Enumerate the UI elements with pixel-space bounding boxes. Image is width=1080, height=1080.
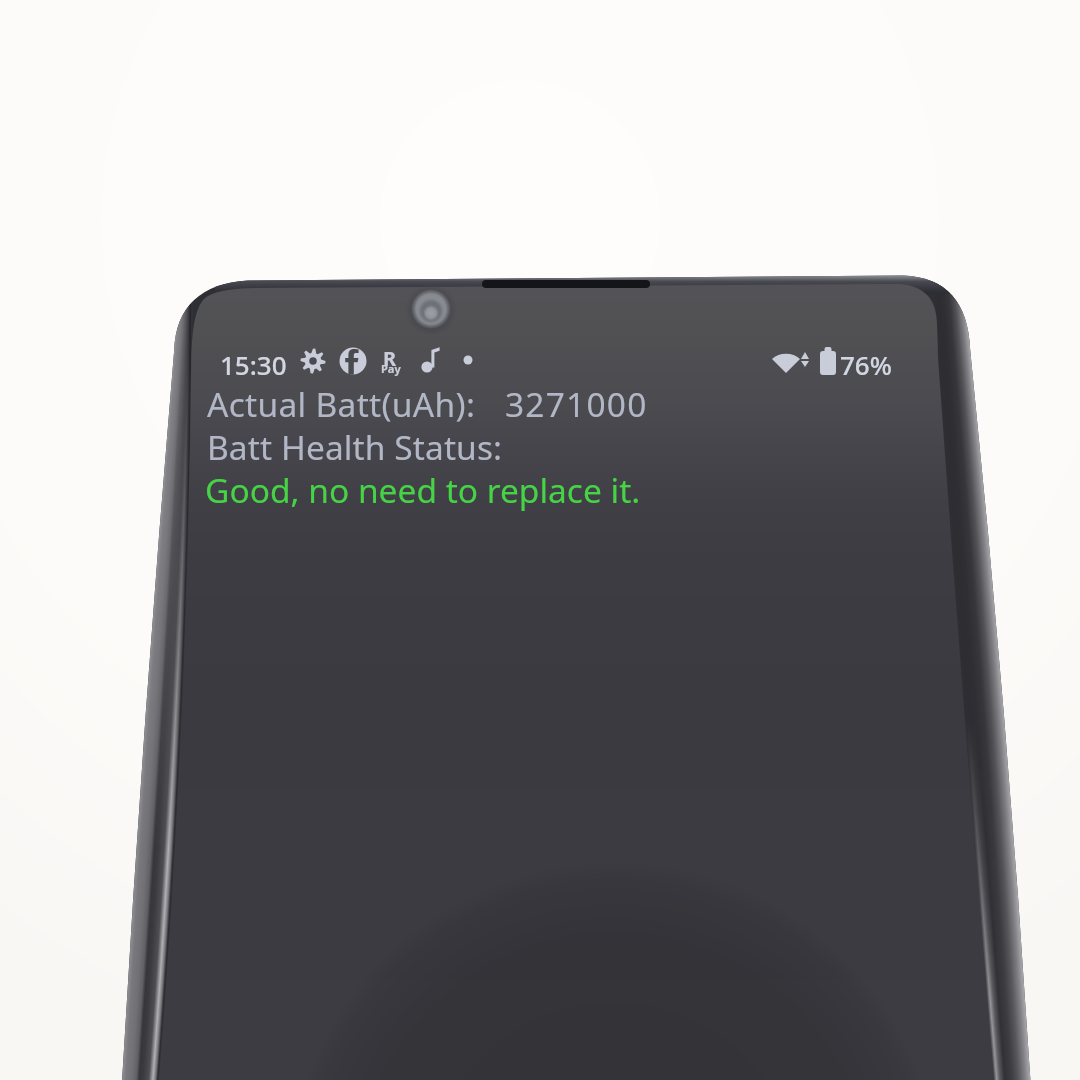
button[interactable]: Battery health status — [207, 424, 647, 466]
button[interactable]: R Pay — [375, 345, 407, 377]
button[interactable]: Good, no need to replace it. — [205, 467, 645, 511]
button[interactable]: Actual battery capacity 3271000 uAh — [207, 381, 647, 423]
button[interactable]: Clock 15:30 — [213, 346, 289, 378]
button[interactable]: Music — [415, 345, 447, 377]
button[interactable]: Settings — [299, 345, 329, 377]
button[interactable]: Battery 76 percent — [816, 345, 896, 381]
button[interactable]: Facebook — [337, 345, 369, 377]
button[interactable]: Battery health info screen — [0, 0, 1080, 1080]
button[interactable]: Wi-Fi — [770, 345, 814, 381]
